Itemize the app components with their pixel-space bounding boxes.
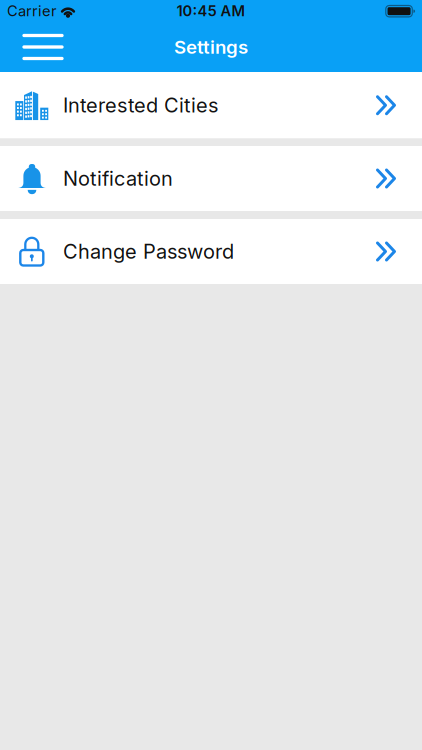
button[interactable]: Notification [0, 146, 422, 211]
staticText: Interested Cities [63, 93, 218, 117]
staticText: 10:45 AM [176, 2, 245, 20]
staticText: Carrier [7, 2, 57, 20]
button[interactable]: Menu [0, 22, 64, 71]
staticText: Change Password [63, 240, 234, 263]
staticText: Notification [63, 167, 173, 190]
staticText: Settings [174, 36, 248, 58]
button[interactable]: Interested Cities [0, 72, 422, 138]
button[interactable]: Change Password [0, 219, 422, 284]
